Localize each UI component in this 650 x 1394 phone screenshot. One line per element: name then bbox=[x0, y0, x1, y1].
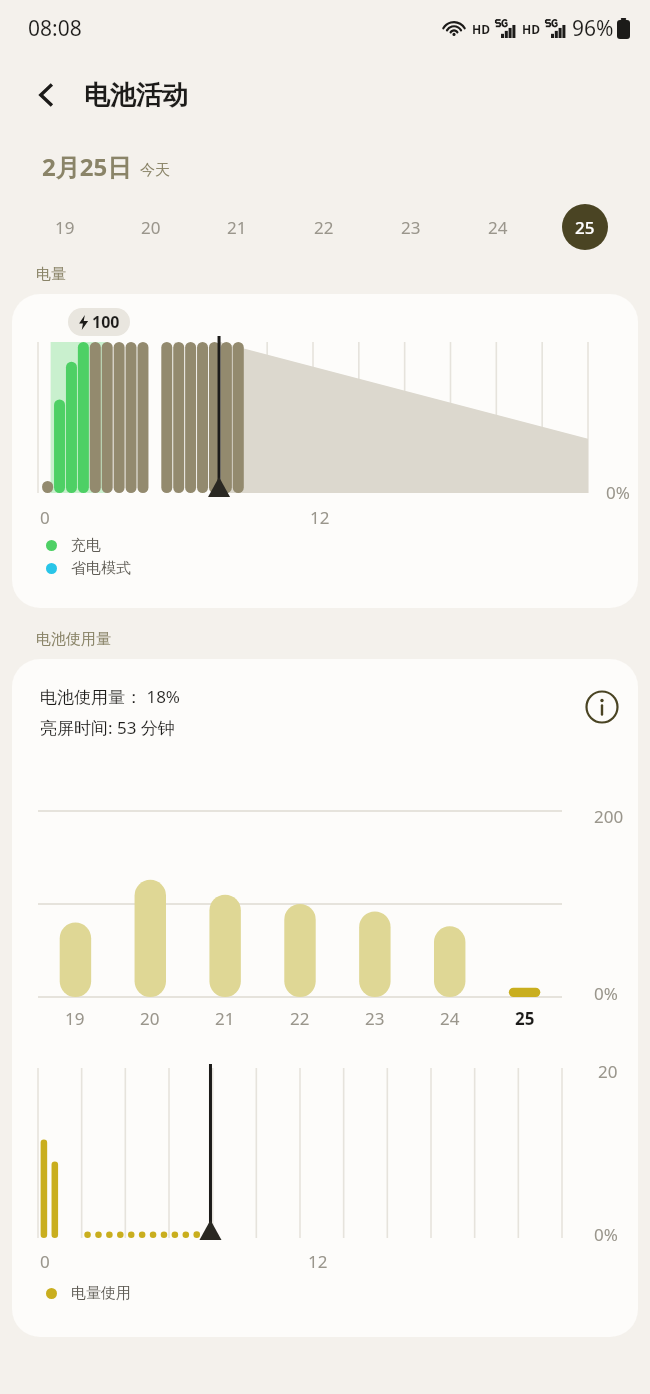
staticText: 充电 bbox=[71, 536, 101, 555]
staticText: 0% bbox=[606, 481, 630, 504]
staticText: 0 bbox=[40, 506, 50, 529]
button[interactable]: 21 bbox=[194, 201, 280, 253]
staticText: 0 bbox=[40, 1250, 50, 1273]
staticText: 25 bbox=[575, 216, 595, 239]
staticText: 电池活动 bbox=[84, 79, 188, 112]
staticText: 19 bbox=[55, 216, 75, 239]
button[interactable]: Info bbox=[580, 685, 624, 729]
button[interactable]: 电池使用量： 18% bbox=[12, 659, 638, 1337]
staticText: 省电模式 bbox=[71, 559, 131, 578]
staticText: 96% bbox=[572, 14, 614, 43]
staticText: HD bbox=[522, 21, 540, 37]
staticText: 2月25日 bbox=[42, 150, 132, 183]
button[interactable]: Back bbox=[22, 71, 70, 119]
staticText: 21 bbox=[227, 216, 247, 239]
button[interactable]: 22 bbox=[280, 201, 367, 253]
staticText: 20 bbox=[141, 216, 161, 239]
staticText: 亮屏时间: 53 分钟 bbox=[40, 716, 175, 739]
staticText: 23 bbox=[365, 1007, 385, 1030]
staticText: 0% bbox=[594, 982, 618, 1005]
staticText: 电池使用量： 18% bbox=[40, 685, 180, 708]
button[interactable]: 19 bbox=[22, 201, 108, 253]
staticText: HD bbox=[472, 21, 490, 37]
staticText: 22 bbox=[314, 216, 334, 239]
staticText: 20 bbox=[140, 1007, 160, 1030]
staticText: 21 bbox=[215, 1007, 235, 1030]
staticText: 电量 bbox=[36, 265, 66, 284]
staticText: 12 bbox=[308, 1250, 328, 1273]
staticText: 24 bbox=[440, 1007, 460, 1030]
button[interactable]: 24 bbox=[454, 201, 541, 253]
staticText: 25 bbox=[515, 1007, 535, 1030]
staticText: 08:08 bbox=[28, 14, 82, 43]
button[interactable]: 100 bbox=[12, 294, 638, 608]
staticText: 0% bbox=[594, 1223, 618, 1246]
staticText: 200 bbox=[594, 805, 624, 828]
staticText: 20 bbox=[598, 1060, 618, 1083]
button[interactable]: 25 bbox=[541, 201, 628, 253]
staticText: 22 bbox=[290, 1007, 310, 1030]
staticText: 电量使用 bbox=[71, 1284, 131, 1303]
staticText: 12 bbox=[310, 506, 330, 529]
staticText: 19 bbox=[65, 1007, 85, 1030]
button[interactable]: 20 bbox=[108, 201, 194, 253]
button[interactable]: 23 bbox=[367, 201, 454, 253]
staticText: 100 bbox=[92, 311, 120, 333]
staticText: 24 bbox=[488, 216, 508, 239]
staticText: 电池使用量 bbox=[36, 630, 111, 649]
staticText: 23 bbox=[401, 216, 421, 239]
staticText: 今天 bbox=[140, 161, 170, 180]
